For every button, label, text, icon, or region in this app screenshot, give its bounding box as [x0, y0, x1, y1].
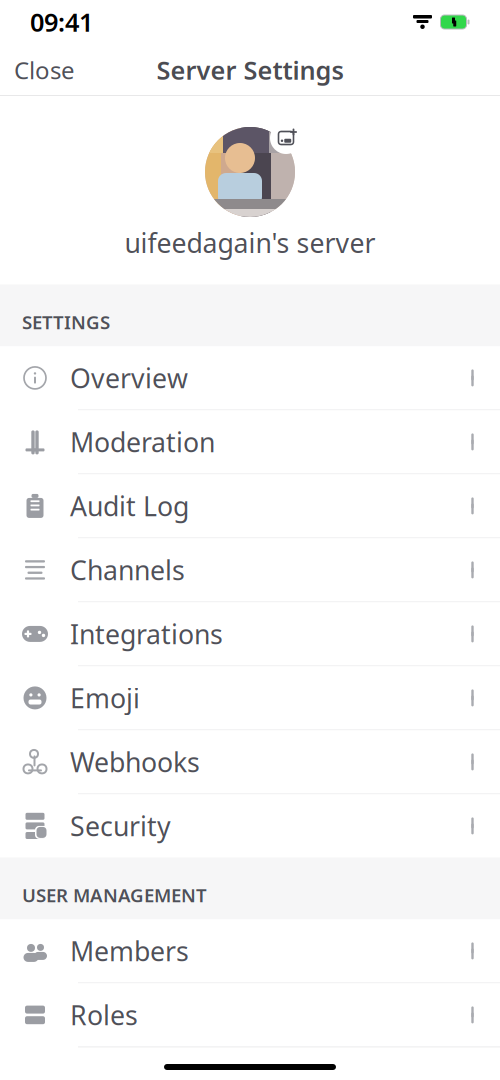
button[interactable]: Overview [0, 346, 500, 410]
button[interactable]: Emoji [0, 666, 500, 730]
staticText: Security [70, 808, 171, 844]
button[interactable]: Webhooks [0, 730, 500, 794]
staticText: Webhooks [70, 744, 200, 780]
button[interactable]: Roles [0, 983, 500, 1047]
staticText: Moderation [70, 424, 215, 460]
staticText: 09:41 [30, 5, 93, 39]
staticText: Audit Log [70, 488, 189, 524]
staticText: Integrations [70, 616, 223, 652]
staticText: Server Settings [156, 53, 343, 87]
staticText: Overview [70, 360, 188, 396]
button[interactable]: Members [0, 919, 500, 983]
staticText: SETTINGS [22, 310, 110, 334]
button[interactable]: Close [0, 44, 89, 96]
staticText: USER MANAGEMENT [22, 883, 207, 907]
staticText: Members [70, 933, 189, 969]
staticText: Close [14, 54, 75, 86]
staticText: Emoji [70, 680, 140, 716]
button[interactable]: Change server icon [198, 122, 302, 222]
staticText: uifeedagain's server [124, 225, 375, 260]
staticText: Channels [70, 552, 185, 588]
button[interactable]: Channels [0, 538, 500, 602]
staticText: Roles [70, 997, 138, 1033]
button[interactable]: Security [0, 794, 500, 857]
button[interactable]: Audit Log [0, 474, 500, 538]
button[interactable]: Moderation [0, 410, 500, 474]
button[interactable]: Integrations [0, 602, 500, 666]
